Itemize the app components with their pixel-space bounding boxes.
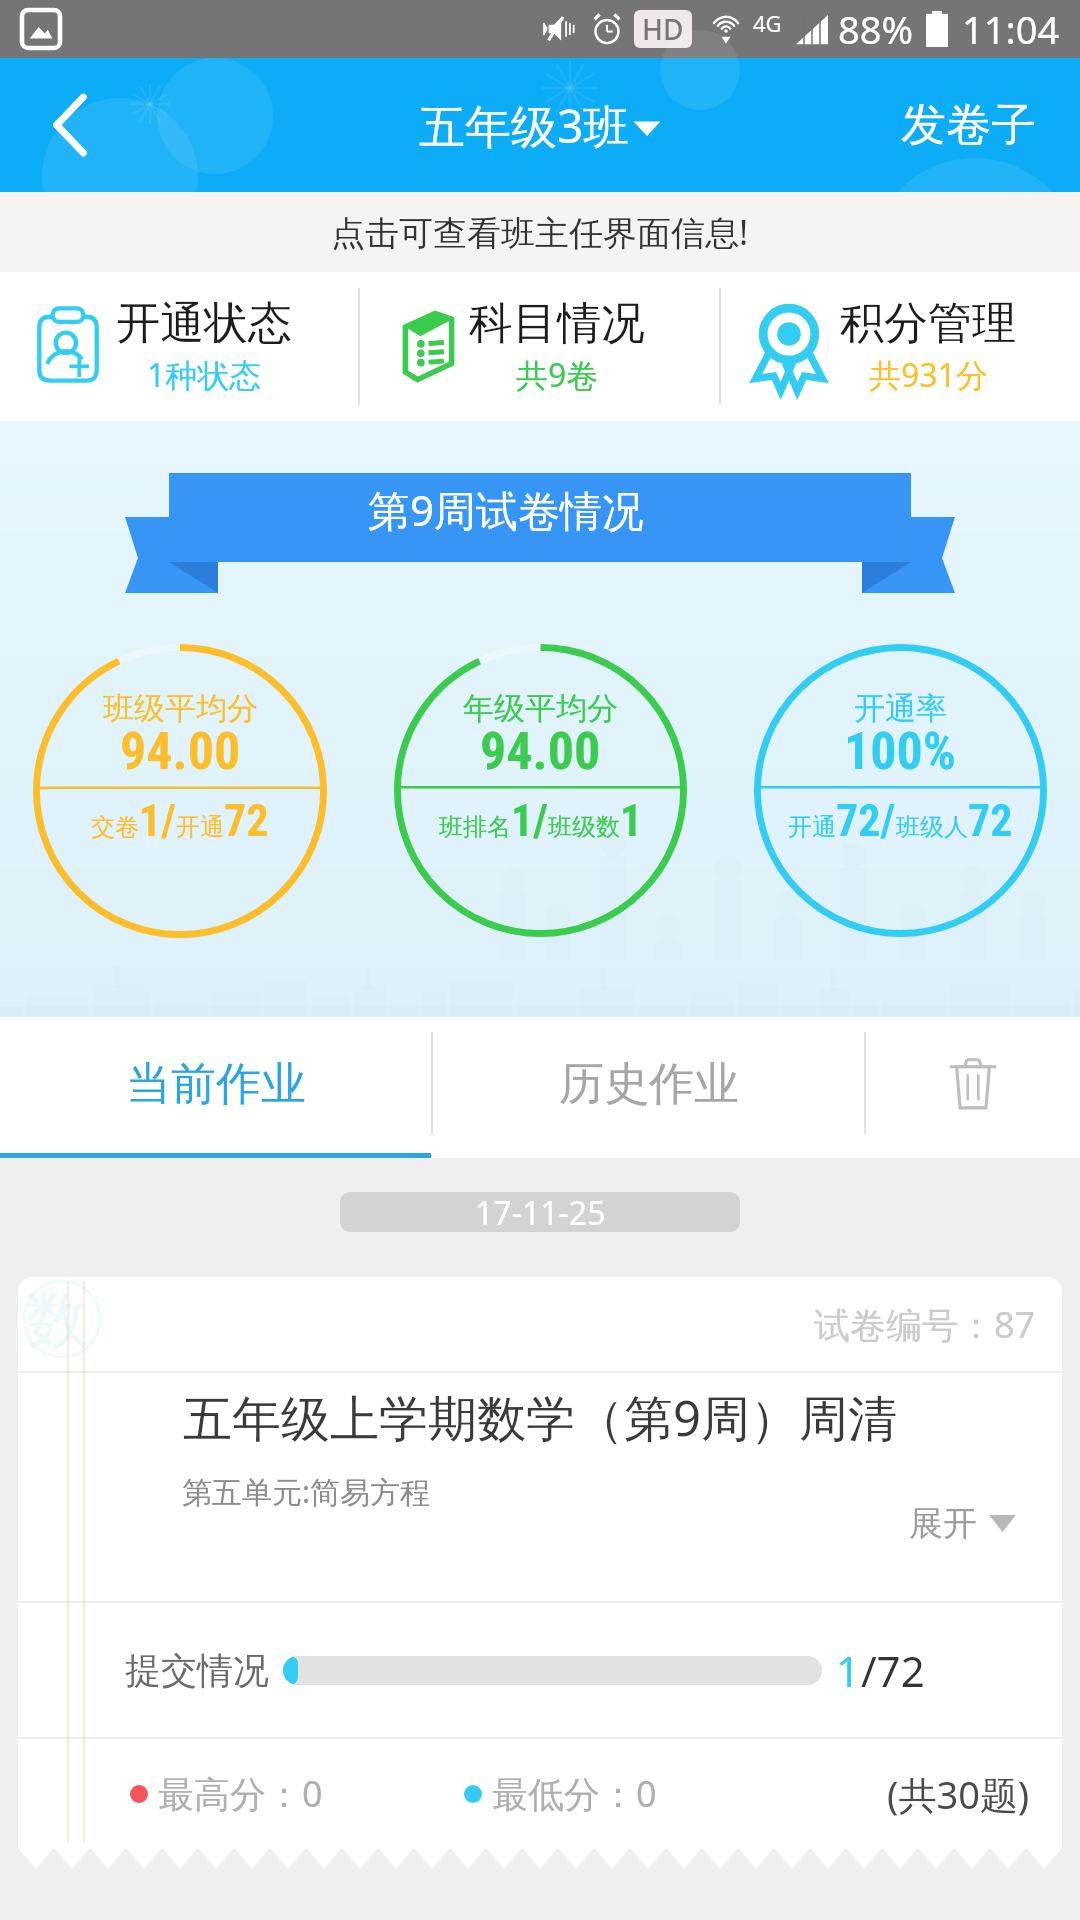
- staticText: 历史作业: [559, 1056, 739, 1113]
- staticText: 100%: [844, 721, 957, 782]
- staticText: 开通状态: [116, 296, 292, 351]
- staticText: 展开: [909, 1502, 977, 1545]
- staticText: 88%: [838, 3, 914, 55]
- staticText: 72/: [836, 795, 896, 847]
- staticText: 17-11-25: [475, 1192, 606, 1231]
- button[interactable]: Back: [0, 58, 140, 192]
- staticText: 点击可查看班主任界面信息!: [331, 209, 749, 255]
- button[interactable]: 数: [18, 1277, 1062, 1869]
- staticText: 科目情况: [469, 296, 645, 351]
- staticText: 发卷子: [901, 97, 1036, 154]
- button[interactable]: 发卷子: [857, 73, 1080, 178]
- staticText: HD: [642, 10, 684, 48]
- staticText: 第五单元:简易方程: [182, 1471, 431, 1512]
- staticText: 共931分: [869, 353, 988, 397]
- staticText: 班排名: [439, 812, 511, 842]
- staticText: 五年级上学期数学（第9周）周清: [183, 1384, 898, 1451]
- staticText: 开通: [788, 812, 836, 842]
- staticText: 1/: [139, 795, 176, 847]
- staticText: 数: [26, 1281, 88, 1359]
- staticText: 1: [836, 1642, 861, 1699]
- button[interactable]: 当前作业: [0, 1017, 431, 1158]
- staticText: 试卷编号：87: [814, 1300, 1036, 1349]
- button[interactable]: 五年级3班: [413, 88, 668, 163]
- staticText: 当前作业: [126, 1056, 306, 1113]
- staticText: 交卷: [91, 812, 139, 842]
- staticText: 开通率: [854, 689, 947, 728]
- staticText: 94.00: [480, 721, 601, 782]
- button[interactable]: Delete: [866, 1017, 1080, 1158]
- button[interactable]: 展开: [909, 1502, 1016, 1545]
- staticText: 班级平均分: [103, 689, 258, 728]
- staticText: 94.00: [120, 721, 241, 782]
- button[interactable]: 点击可查看班主任界面信息!: [0, 192, 1080, 272]
- staticText: 1: [620, 795, 643, 847]
- staticText: 最高分：0: [158, 1769, 323, 1818]
- button[interactable]: 历史作业: [433, 1017, 864, 1158]
- button[interactable]: 积分管理: [721, 272, 1080, 421]
- staticText: 开通: [176, 812, 224, 842]
- button[interactable]: 开通状态: [0, 272, 358, 421]
- staticText: 年级平均分: [463, 689, 618, 728]
- staticText: 班级人: [896, 812, 968, 842]
- staticText: 最低分：0: [492, 1769, 657, 1818]
- staticText: 班级数: [548, 812, 620, 842]
- staticText: (共30题): [887, 1768, 1030, 1820]
- staticText: 1/: [511, 795, 548, 847]
- staticText: 提交情况: [125, 1648, 269, 1693]
- staticText: 第9周试卷情况: [368, 481, 645, 538]
- staticText: 11:04: [962, 3, 1060, 55]
- staticText: 72: [224, 795, 269, 847]
- staticText: 4G: [753, 8, 782, 38]
- staticText: 共9卷: [516, 353, 599, 397]
- staticText: 五年级3班: [419, 94, 630, 157]
- staticText: 1种状态: [147, 353, 262, 397]
- button[interactable]: 科目情况: [360, 272, 719, 421]
- staticText: 72: [968, 795, 1013, 847]
- staticText: /72: [861, 1642, 925, 1699]
- staticText: 积分管理: [840, 296, 1016, 351]
